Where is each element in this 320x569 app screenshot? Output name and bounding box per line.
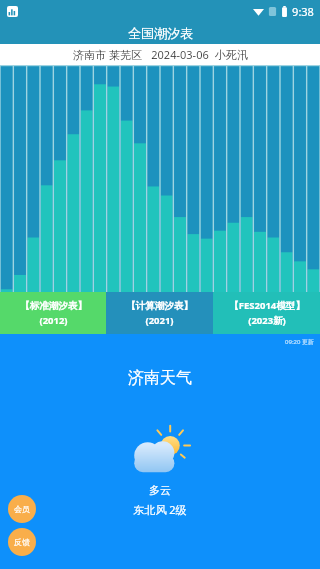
button[interactable]: 反馈 — [8, 528, 36, 556]
button[interactable]: 【FES2014模型】 — [213, 292, 320, 334]
button[interactable]: 【计算潮汐表】 — [106, 292, 213, 334]
button[interactable]: 会员 — [8, 495, 36, 523]
staticText: 09:20 更新 — [285, 338, 314, 346]
staticText: 反馈 — [14, 537, 30, 547]
button[interactable]: 【标准潮汐表】 — [0, 292, 106, 334]
staticText: 济南市 莱芜区 — [73, 47, 142, 62]
staticText: 会员 — [14, 504, 30, 514]
staticText: (2012) — [39, 314, 68, 327]
staticText: 全国潮汐表 — [128, 25, 193, 41]
staticText: 济南天气 — [128, 368, 192, 388]
staticText: 【FES2014模型】 — [229, 299, 305, 312]
staticText: 9:38 — [292, 4, 314, 19]
staticText: 多云 — [149, 483, 171, 497]
staticText: 2024-03-06 — [151, 47, 209, 62]
staticText: 【标准潮汐表】 — [20, 300, 87, 312]
staticText: 东北风 2级 — [133, 502, 187, 517]
staticText: 【计算潮汐表】 — [126, 300, 193, 312]
staticText: (2023新) — [248, 314, 286, 327]
staticText: 小死汛 — [215, 48, 248, 62]
staticText: (2021) — [145, 314, 174, 327]
